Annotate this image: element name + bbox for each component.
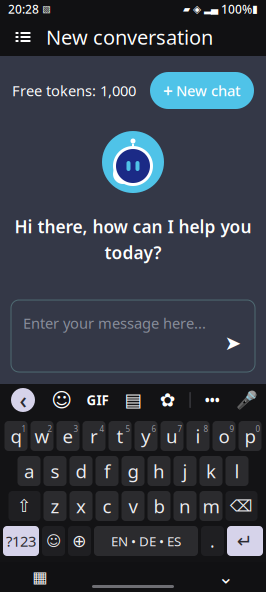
staticText: ▮	[252, 3, 258, 15]
button[interactable]: d	[69, 456, 92, 486]
button[interactable]: Clipboard	[120, 386, 146, 414]
staticText: z	[50, 494, 59, 518]
staticText: 3	[73, 424, 78, 434]
button[interactable]: g	[121, 456, 144, 486]
button[interactable]: Menu	[6, 18, 40, 56]
staticText: ▧	[39, 4, 51, 14]
button[interactable]: ?123	[3, 526, 39, 556]
staticText: ⌫	[230, 497, 253, 515]
button[interactable]: q	[4, 421, 27, 451]
button[interactable]: ⇧	[8, 491, 40, 521]
staticText: 8	[203, 424, 208, 434]
button[interactable]: u	[160, 421, 183, 451]
staticText: 20:28	[8, 1, 39, 17]
button[interactable]: o	[212, 421, 235, 451]
button[interactable]: More	[199, 386, 225, 414]
button[interactable]: p	[238, 421, 261, 451]
button[interactable]: Settings	[155, 386, 181, 414]
staticText: s	[50, 459, 59, 483]
staticText: .	[210, 529, 215, 552]
button[interactable]: m	[199, 491, 222, 521]
button[interactable]: l	[225, 456, 248, 486]
staticText: 0	[255, 424, 260, 434]
button[interactable]: j	[173, 456, 196, 486]
staticText: ▤	[124, 389, 142, 411]
staticText: ➤	[224, 332, 241, 354]
button[interactable]: a	[17, 456, 40, 486]
staticText: ⇧	[17, 496, 32, 516]
button[interactable]: i	[186, 421, 209, 451]
staticText: n	[179, 494, 191, 518]
button[interactable]: k	[199, 456, 222, 486]
staticText: New conversation	[46, 24, 213, 50]
staticText: 🎤	[236, 390, 258, 410]
staticText: EN • DE • ES	[111, 532, 181, 550]
staticText: t	[116, 424, 123, 448]
staticText: ⌄	[218, 566, 234, 588]
staticText: New chat	[176, 81, 241, 100]
button[interactable]: ⌫	[225, 491, 257, 521]
button[interactable]: b	[147, 491, 170, 521]
staticText: b	[153, 494, 164, 518]
staticText: a	[24, 459, 34, 483]
staticText: i	[195, 424, 200, 448]
staticText: 5	[125, 424, 130, 434]
staticText: 1	[21, 424, 26, 434]
button[interactable]: Stickers	[49, 386, 75, 414]
button[interactable]: Back	[6, 386, 40, 414]
staticText: l	[234, 459, 239, 483]
staticText: ☺	[51, 389, 72, 411]
staticText: j	[182, 459, 187, 483]
staticText: +	[163, 79, 173, 102]
staticText: o	[218, 424, 229, 448]
button[interactable]: f	[95, 456, 118, 486]
staticText: GIF	[86, 391, 108, 409]
button[interactable]: v	[121, 491, 144, 521]
button[interactable]: n	[173, 491, 196, 521]
staticText: 7	[177, 424, 182, 434]
button[interactable]: z	[43, 491, 66, 521]
button[interactable]: e	[56, 421, 79, 451]
staticText: q	[10, 424, 21, 448]
staticText: Enter your message here...	[23, 313, 206, 333]
button[interactable]: ↵	[227, 526, 263, 556]
button[interactable]: EN • DE • ES	[94, 526, 198, 556]
button[interactable]: +	[150, 72, 254, 109]
button[interactable]: ⊕	[68, 526, 91, 556]
button[interactable]: c	[95, 491, 118, 521]
staticText: Hi there, how can I help you	[14, 215, 251, 238]
staticText: ▂▄	[201, 4, 218, 14]
staticText: w	[34, 424, 49, 448]
button[interactable]: h	[147, 456, 170, 486]
button[interactable]: GIF	[83, 386, 111, 414]
button[interactable]: r	[82, 421, 105, 451]
button[interactable]: Keyboard	[24, 563, 56, 591]
button[interactable]: ☺	[42, 526, 65, 556]
staticText: 9	[229, 424, 234, 434]
staticText: ⊕	[72, 531, 87, 551]
button[interactable]: y	[134, 421, 157, 451]
staticText: 6	[151, 424, 156, 434]
button[interactable]: s	[43, 456, 66, 486]
staticText: p	[244, 424, 255, 448]
button[interactable]: Voice input	[234, 386, 260, 414]
button[interactable]: .	[201, 526, 224, 556]
button[interactable]: x	[69, 491, 92, 521]
staticText: 2	[47, 424, 52, 434]
staticText: h	[153, 459, 165, 483]
staticText: ?123	[6, 531, 36, 551]
staticText: ▰	[183, 4, 190, 14]
button[interactable]: t	[108, 421, 131, 451]
staticText: c	[102, 494, 111, 518]
staticText: d	[75, 459, 86, 483]
staticText: u	[166, 424, 178, 448]
button[interactable]: Hide keyboard	[210, 563, 242, 591]
button[interactable]: w	[30, 421, 53, 451]
staticText: k	[206, 459, 216, 483]
staticText: ‹	[19, 385, 26, 415]
staticText: m	[202, 494, 219, 518]
staticText: ☺	[46, 533, 61, 549]
staticText: today?	[104, 241, 161, 264]
staticText: ↵	[237, 530, 253, 552]
button[interactable]: Send	[219, 315, 247, 357]
